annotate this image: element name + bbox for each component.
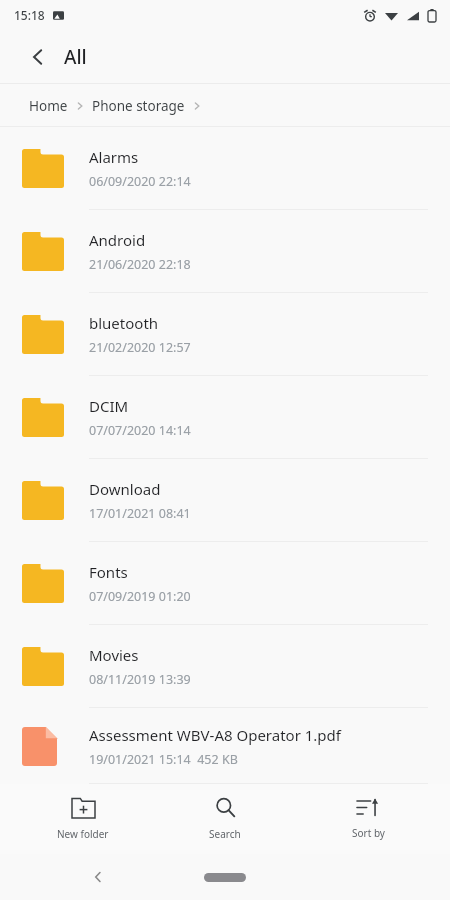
button[interactable]: Search [165,791,285,847]
button[interactable]: Fonts [0,542,450,625]
staticText: Download [89,479,161,499]
staticText: 19/01/2021 15:14 452 KB [89,751,238,768]
staticText: All [64,44,87,70]
staticText: Movies [89,645,139,665]
staticText: 21/06/2020 22:18 [89,256,191,273]
staticText: bluetooth [89,313,159,333]
button[interactable]: Navigate back [80,859,116,895]
staticText: 07/07/2020 14:14 [89,422,191,439]
button[interactable]: bluetooth [0,293,450,376]
button[interactable]: Back [18,37,58,77]
button[interactable]: Movies [0,625,450,708]
button[interactable]: Home [29,97,68,115]
staticText: Search [209,827,241,841]
button[interactable]: New folder [23,792,143,847]
button[interactable]: Home [204,873,246,882]
staticText: Android [89,230,146,250]
button[interactable]: DCIM [0,376,450,459]
staticText: 21/02/2020 12:57 [89,339,191,356]
staticText: 15:18 [14,7,45,23]
button[interactable]: Assessment WBV-A8 Operator 1.pdf [0,708,450,784]
button[interactable]: Phone storage [92,97,185,115]
staticText: 07/09/2019 01:20 [89,588,191,605]
staticText: DCIM [89,396,129,416]
staticText: 17/01/2021 08:41 [89,505,191,522]
button[interactable]: Download [0,459,450,542]
staticText: 06/09/2020 22:14 [89,173,191,190]
staticText: New folder [57,827,109,841]
staticText: 08/11/2019 13:39 [89,671,191,688]
button[interactable]: Sort by [308,792,428,846]
button[interactable]: Alarms [0,127,450,210]
staticText: Alarms [89,147,139,167]
button[interactable]: Android [0,210,450,293]
staticText: Fonts [89,562,128,582]
staticText: Sort by [352,826,385,840]
staticText: Assessment WBV-A8 Operator 1.pdf [89,725,341,745]
